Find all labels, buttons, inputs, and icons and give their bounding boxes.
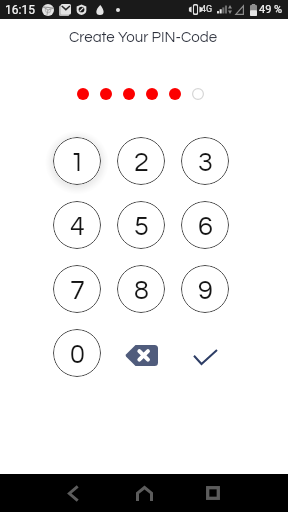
- button[interactable]: Confirm PIN: [181, 329, 229, 377]
- staticText: 2: [134, 149, 149, 177]
- staticText: 1: [70, 149, 85, 177]
- button[interactable]: 3: [181, 137, 229, 185]
- button[interactable]: Back: [53, 474, 93, 512]
- staticText: 9: [198, 277, 213, 305]
- staticText: 6: [198, 213, 213, 241]
- button[interactable]: Backspace: [117, 329, 165, 377]
- button[interactable]: 1: [53, 137, 101, 185]
- button[interactable]: 8: [117, 265, 165, 313]
- staticText: 4G: [201, 4, 213, 15]
- staticText: Create Your PIN-Code: [69, 30, 217, 45]
- button[interactable]: 0: [53, 329, 101, 377]
- staticText: 7: [70, 277, 85, 305]
- button[interactable]: 6: [181, 201, 229, 249]
- staticText: 16:15: [5, 3, 35, 17]
- button[interactable]: Home: [124, 474, 164, 512]
- button[interactable]: 4: [53, 201, 101, 249]
- button[interactable]: 9: [181, 265, 229, 313]
- button[interactable]: 7: [53, 265, 101, 313]
- button[interactable]: 2: [117, 137, 165, 185]
- button[interactable]: Recent apps: [193, 474, 233, 512]
- staticText: 5: [134, 213, 149, 241]
- button[interactable]: 5: [117, 201, 165, 249]
- staticText: 3: [198, 149, 213, 177]
- staticText: 4: [70, 213, 85, 241]
- staticText: 0: [70, 341, 85, 369]
- staticText: 8: [134, 277, 149, 305]
- staticText: 49 %: [259, 3, 283, 16]
